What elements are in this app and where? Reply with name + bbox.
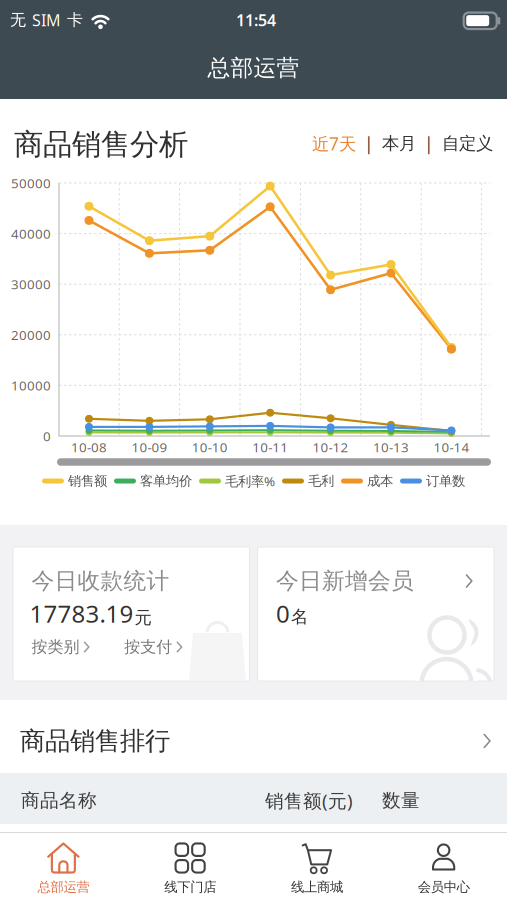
- button[interactable]: 商品销售排行: [0, 700, 507, 773]
- button[interactable]: 会员中心: [380, 833, 507, 900]
- staticText: 客单均价: [140, 473, 192, 489]
- staticText: 商品销售分析: [14, 126, 188, 162]
- staticText: 按支付: [124, 637, 172, 657]
- staticText: 11:54: [236, 9, 276, 31]
- staticText: 10-13: [373, 438, 409, 456]
- staticText: 10-14: [433, 438, 469, 456]
- staticText: 10-09: [131, 438, 167, 456]
- staticText: 商品销售排行: [20, 725, 170, 756]
- button[interactable]: 今日新增会员: [257, 547, 494, 681]
- staticText: 今日新增会员: [276, 567, 414, 595]
- button[interactable]: 近7天: [312, 132, 356, 155]
- staticText: |: [364, 132, 374, 155]
- staticText: 元: [134, 607, 151, 628]
- staticText: 自定义: [442, 133, 493, 154]
- staticText: |: [424, 132, 434, 155]
- staticText: 10-10: [192, 438, 228, 456]
- staticText: 20000: [11, 326, 51, 344]
- staticText: 17783.19: [29, 598, 133, 629]
- staticText: 近7天: [312, 132, 356, 155]
- button[interactable]: 按类别: [31, 637, 91, 657]
- staticText: 按类别: [31, 637, 79, 657]
- staticText: 商品名称: [21, 789, 97, 812]
- button[interactable]: 自定义: [442, 133, 493, 154]
- button[interactable]: 线下门店: [127, 833, 254, 900]
- staticText: 销售额: [68, 473, 107, 489]
- staticText: 今日收款统计: [31, 567, 169, 595]
- staticText: 10000: [11, 376, 51, 394]
- staticText: 线上商城: [291, 879, 343, 895]
- staticText: 会员中心: [418, 879, 470, 895]
- staticText: 40000: [11, 225, 51, 242]
- staticText: 本月: [382, 133, 416, 154]
- staticText: 30000: [11, 275, 51, 293]
- staticText: 成本: [367, 473, 393, 489]
- button[interactable]: 本月: [382, 133, 416, 154]
- staticText: 线下门店: [164, 879, 216, 895]
- staticText: 10-12: [313, 438, 349, 456]
- staticText: 毛利: [308, 473, 334, 489]
- button[interactable]: 按支付: [124, 637, 184, 657]
- staticText: 0: [43, 427, 51, 445]
- staticText: 50000: [11, 174, 51, 192]
- staticText: 10-08: [71, 438, 107, 456]
- staticText: 0: [276, 598, 290, 629]
- staticText: 卡: [67, 10, 83, 30]
- staticText: 名: [291, 606, 308, 627]
- staticText: 销售额(元): [265, 788, 353, 813]
- button[interactable]: 总部运营: [0, 833, 127, 900]
- staticText: 总部运营: [37, 879, 89, 895]
- staticText: 数量: [382, 789, 420, 812]
- staticText: 无: [10, 10, 26, 30]
- staticText: 总部运营: [207, 54, 299, 82]
- staticText: 毛利率%: [225, 472, 275, 490]
- staticText: 订单数: [426, 473, 465, 489]
- staticText: 10-11: [252, 438, 288, 456]
- button[interactable]: 线上商城: [253, 833, 380, 900]
- staticText: SIM: [32, 9, 61, 31]
